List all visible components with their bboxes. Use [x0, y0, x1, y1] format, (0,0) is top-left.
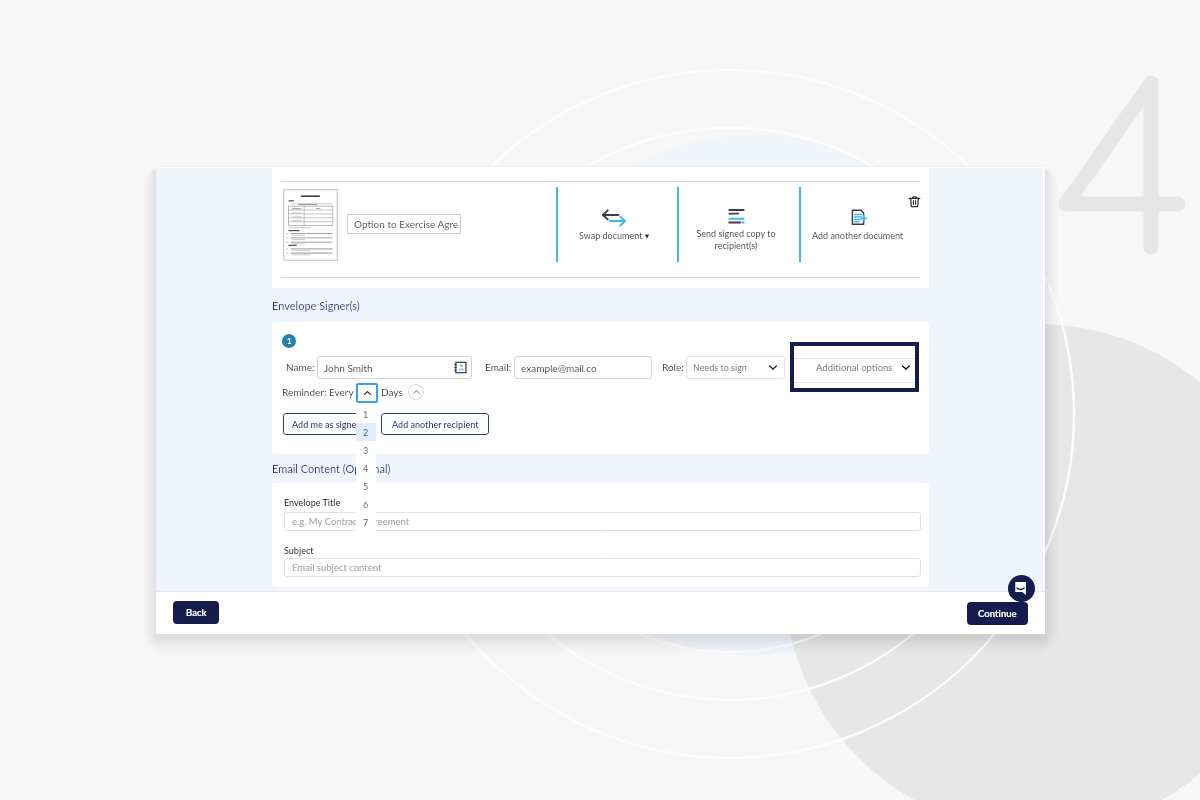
staticText: Reminder: Every [282, 386, 354, 398]
staticText: Name: [286, 361, 315, 373]
staticText: Email subject content [292, 562, 382, 573]
button[interactable]: Back [173, 601, 219, 624]
button[interactable]: Add me as signer [283, 413, 369, 435]
button[interactable]: Send signed copy to recipient(s) [676, 209, 796, 232]
button[interactable]: 7 [356, 513, 376, 531]
staticText: example@mail.co [521, 362, 597, 374]
staticText: 1 [287, 336, 292, 346]
staticText: Days [381, 386, 403, 398]
staticText: Swap document ▾ [579, 230, 650, 241]
button[interactable]: John Smith [317, 356, 472, 379]
staticText: Subject [284, 545, 314, 556]
staticText: Envelope Signer(s) [272, 299, 360, 312]
button[interactable]: Add another document [798, 209, 918, 225]
staticText: Role: [662, 361, 684, 373]
staticText: Add another document [812, 230, 904, 241]
staticText: 2 [363, 427, 369, 438]
button[interactable]: 6 [356, 495, 376, 513]
staticText: Add me as signer [292, 419, 360, 430]
staticText: John Smith [324, 362, 373, 374]
button[interactable]: Collapse reminder [408, 384, 424, 400]
staticText: Add another recipient [392, 419, 479, 430]
staticText: Email: [485, 361, 512, 373]
button[interactable]: Reminder interval days [356, 383, 378, 403]
button[interactable]: Option to Exercise Agre [347, 214, 461, 234]
staticText: Back [186, 607, 207, 618]
staticText: Additional options [816, 362, 893, 373]
button[interactable]: example@mail.co [514, 356, 652, 379]
staticText: 3 [363, 445, 369, 456]
staticText: Continue [978, 608, 1017, 619]
staticText: Option to Exercise Agre [354, 218, 459, 230]
button[interactable]: Needs to sign [686, 356, 785, 379]
staticText: Send signed copy to recipient(s) [696, 228, 776, 251]
button[interactable]: Email subject content [284, 558, 921, 577]
button[interactable]: Swap document ▾ [552, 210, 676, 226]
staticText: Envelope Title [284, 497, 341, 508]
button[interactable]: 2 [356, 423, 376, 441]
staticText: 1 [363, 409, 369, 420]
staticText: 7 [363, 517, 369, 528]
button[interactable]: 3 [356, 441, 376, 459]
staticText: 4 [363, 463, 369, 474]
button[interactable]: 5 [356, 477, 376, 495]
button[interactable]: Delete document [906, 193, 922, 209]
button[interactable]: 1 [356, 405, 376, 423]
button[interactable]: e.g. My Contract Agreement [284, 512, 921, 531]
button[interactable]: Additional options [794, 346, 915, 388]
button[interactable]: Continue [967, 602, 1028, 625]
button[interactable]: Open chat support [1008, 575, 1035, 602]
button[interactable]: Add another recipient [381, 413, 489, 435]
staticText: Needs to sign [693, 362, 747, 373]
staticText: 5 [363, 481, 369, 492]
staticText: 6 [363, 499, 369, 510]
staticText: Email Content (Optional) [272, 462, 391, 475]
staticText: e.g. My Contract Agreement [292, 516, 410, 527]
button[interactable]: 4 [356, 459, 376, 477]
